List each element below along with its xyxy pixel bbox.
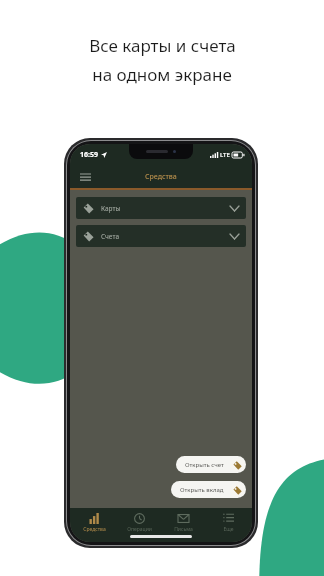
button[interactable]: Menu — [76, 168, 94, 186]
button[interactable]: Операции — [118, 512, 160, 534]
staticText: Средства — [83, 526, 106, 533]
staticText: Открыть вклад — [180, 486, 224, 494]
staticText: 16:59 — [80, 150, 98, 160]
button[interactable]: Средства — [73, 512, 115, 534]
button[interactable]: Открыть вклад — [171, 481, 246, 498]
button[interactable]: Письма — [162, 512, 204, 534]
staticText: Все карты и счета — [89, 34, 236, 57]
button[interactable]: Счета — [76, 225, 246, 247]
staticText: Счета — [101, 232, 120, 241]
staticText: Операции — [127, 526, 152, 533]
staticText: Письма — [174, 526, 193, 533]
staticText: на одном экране — [92, 63, 232, 86]
button[interactable]: Открыть счет — [176, 456, 246, 473]
button[interactable]: Еще — [207, 512, 249, 534]
staticText: Карты — [101, 204, 121, 213]
staticText: Еще — [223, 526, 234, 533]
staticText: Средства — [145, 172, 177, 182]
staticText: LTE — [220, 151, 230, 159]
staticText: Открыть счет — [185, 461, 224, 469]
button[interactable]: Карты — [76, 197, 246, 219]
